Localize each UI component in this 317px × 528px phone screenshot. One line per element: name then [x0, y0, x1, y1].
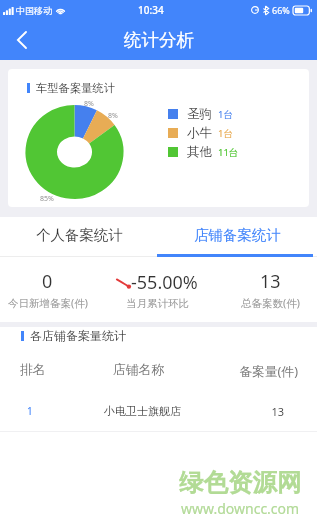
staticText: 小电卫士旗舰店: [83, 404, 202, 418]
staticText: 统计分析: [124, 29, 194, 51]
staticText: 总备案数(件): [241, 296, 300, 310]
staticText: 绿色资源网: [179, 467, 302, 498]
staticText: 其他: [187, 144, 212, 160]
button[interactable]: Back: [0, 20, 42, 60]
staticText: -55.00%: [131, 270, 198, 295]
button[interactable]: 个人备案统计: [0, 217, 158, 257]
staticText: 今日新增备案(件): [8, 296, 88, 310]
staticText: 备案量(件): [219, 362, 298, 379]
staticText: 小牛: [187, 125, 212, 141]
staticText: 圣驹: [187, 106, 212, 122]
staticText: 1: [27, 404, 107, 418]
staticText: 中国移动: [16, 5, 52, 16]
staticText: 11台: [218, 146, 239, 159]
staticText: 85%: [40, 194, 54, 204]
staticText: 排名: [20, 362, 100, 378]
staticText: 各店铺备案量统计: [30, 328, 126, 343]
staticText: 13: [205, 404, 284, 419]
button[interactable]: 1: [0, 391, 317, 431]
staticText: 66%: [272, 4, 290, 16]
staticText: 店铺备案统计: [194, 226, 281, 244]
staticText: 个人备案统计: [36, 226, 123, 244]
staticText: 车型备案量统计: [36, 81, 116, 95]
staticText: 0: [42, 269, 53, 294]
staticText: 13: [260, 269, 281, 294]
button[interactable]: 店铺备案统计: [158, 217, 317, 257]
staticText: 1台: [218, 127, 233, 140]
staticText: www.downcc.com: [181, 499, 300, 518]
staticText: 1台: [218, 108, 233, 121]
staticText: 当月累计环比: [126, 297, 189, 310]
staticText: 店铺名称: [79, 362, 198, 378]
staticText: 8%: [108, 111, 118, 121]
staticText: 10:34: [138, 3, 164, 17]
staticText: 8%: [84, 99, 94, 109]
